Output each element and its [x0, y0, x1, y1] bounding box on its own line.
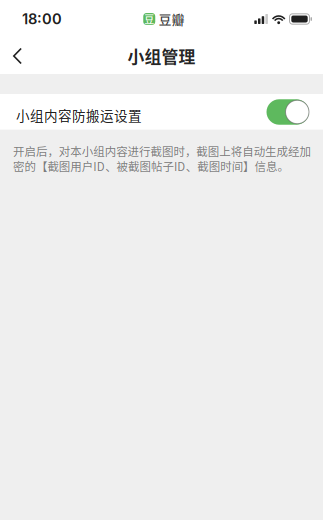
staticText: 小组内容防搬运设置: [16, 105, 142, 125]
button[interactable]: 小组内容防搬运设置: [266, 99, 309, 125]
staticText: 18:00: [22, 10, 62, 28]
staticText: 豆瓣: [159, 10, 185, 28]
button[interactable]: 返回: [0, 38, 36, 74]
staticText: 密的【截图用户ID、被截图帖子ID、截图时间】信息。: [13, 158, 288, 174]
staticText: 小组管理: [127, 44, 195, 68]
staticText: 豆: [144, 12, 154, 26]
staticText: 开启后，对本小组内容进行截图时，截图上将自动生成经加: [13, 143, 310, 159]
